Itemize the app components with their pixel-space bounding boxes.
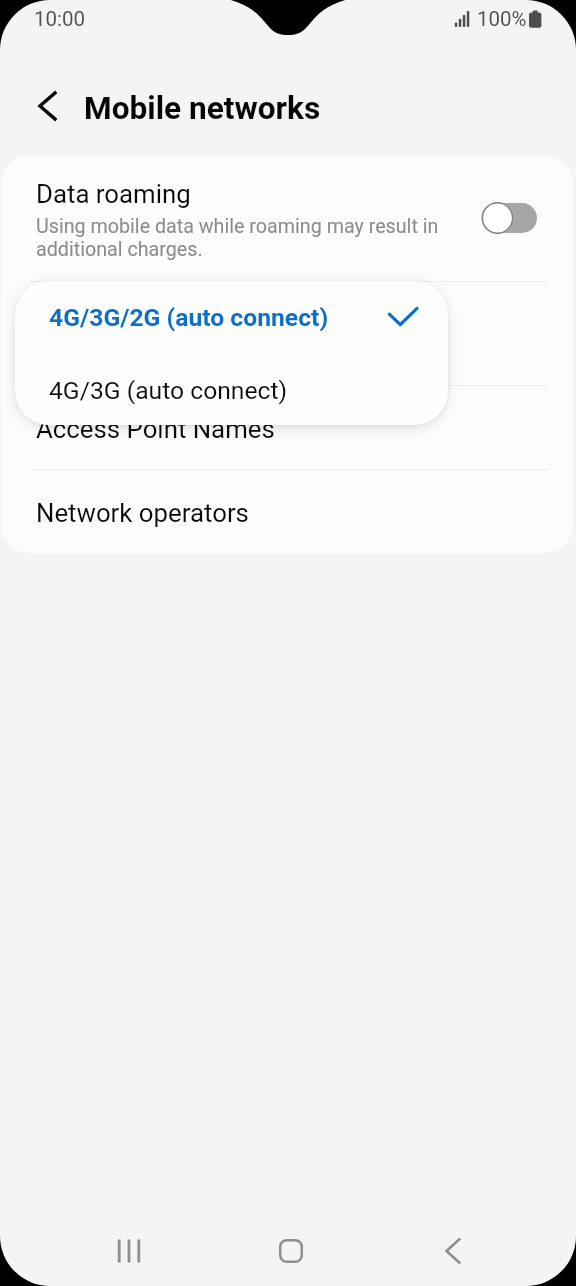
staticText: Preferred network type: [36, 305, 297, 335]
button[interactable]: Home: [255, 1230, 327, 1272]
button[interactable]: Preferred network type: [1, 282, 573, 385]
staticText: Access Point Names: [36, 414, 275, 444]
button[interactable]: Data roaming: [1, 155, 573, 281]
staticText: 10:00: [34, 7, 86, 31]
button[interactable]: Data roaming toggle: [477, 195, 543, 241]
button[interactable]: Back: [417, 1230, 489, 1272]
staticText: Network operators: [36, 498, 249, 528]
button[interactable]: 4G/3G (auto connect): [15, 353, 448, 425]
staticText: Using mobile data while roaming may resu…: [36, 215, 439, 261]
staticText: 100%: [477, 7, 527, 31]
staticText: 4G/3G (auto connect): [49, 376, 288, 405]
button[interactable]: Access Point Names: [1, 386, 573, 469]
button[interactable]: Network operators: [1, 470, 573, 553]
button[interactable]: Recent apps: [93, 1230, 165, 1272]
staticText: 4G/3G/2G (auto connect): [49, 303, 329, 332]
staticText: Mobile networks: [84, 90, 321, 127]
button[interactable]: Navigate up: [24, 83, 70, 129]
button[interactable]: 4G/3G/2G (auto connect): [15, 281, 448, 353]
staticText: Data roaming: [36, 179, 191, 209]
